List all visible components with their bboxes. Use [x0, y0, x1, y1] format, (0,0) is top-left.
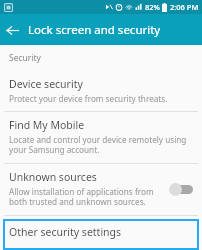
- staticText: Unknown sources: [9, 170, 97, 184]
- staticText: Lock screen and security: [28, 22, 161, 38]
- staticText: Allow installation of applications from …: [9, 186, 163, 208]
- staticText: 82%: [145, 2, 160, 12]
- staticText: Protect your device from security threat…: [9, 93, 168, 104]
- button[interactable]: Device security: [0, 71, 202, 111]
- staticText: Device security: [9, 77, 83, 91]
- staticText: Find My Mobile: [9, 118, 85, 132]
- staticText: Security: [9, 52, 41, 64]
- staticText: Other security settings: [9, 225, 122, 239]
- staticText: Locate and control your device remotely …: [9, 134, 193, 156]
- button[interactable]: Unknown sources: [0, 164, 202, 215]
- staticText: 2:06 PM: [170, 2, 199, 12]
- button[interactable]: Unknown sources toggle, off: [169, 181, 195, 197]
- button[interactable]: Find My Mobile: [0, 112, 202, 163]
- button[interactable]: Navigate up: [0, 18, 24, 42]
- button[interactable]: Other security settings: [3, 219, 199, 250]
